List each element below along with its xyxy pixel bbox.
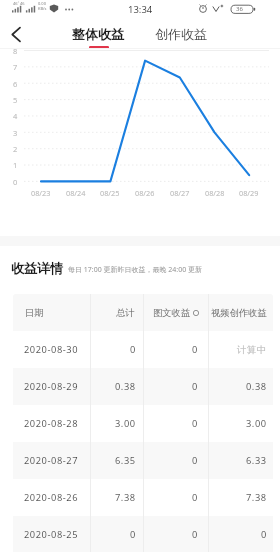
staticText: 08/24 xyxy=(66,188,86,198)
staticText: 08/29 xyxy=(239,188,259,198)
staticText: 0 xyxy=(192,380,198,393)
staticText: 0 xyxy=(130,343,136,356)
staticText: 0 xyxy=(192,454,198,467)
staticText: 0.38 xyxy=(115,380,136,393)
staticText: 1 xyxy=(13,160,18,170)
staticText: 0 xyxy=(13,177,18,187)
staticText: 创作收益 xyxy=(155,26,207,42)
staticText: 2020-08-28 xyxy=(24,417,79,430)
staticText: 8 xyxy=(13,46,18,56)
staticText: 0.00 KB/s xyxy=(38,1,47,11)
staticText: 2020-08-25 xyxy=(24,528,79,541)
button[interactable]: 创作收益 xyxy=(155,18,208,48)
staticText: 0 xyxy=(192,343,198,356)
staticText: 3.00 xyxy=(246,417,267,430)
staticText: 图文收益 xyxy=(153,307,191,319)
staticText: 08/23 xyxy=(31,188,51,198)
staticText: 2020-08-27 xyxy=(24,454,79,467)
staticText: 0 xyxy=(261,528,267,541)
staticText: 视频创作收益 xyxy=(211,307,267,319)
button[interactable]: 整体收益 xyxy=(72,18,129,48)
staticText: 7.38 xyxy=(246,491,267,504)
staticText: 2020-08-30 xyxy=(24,343,79,356)
staticText: 36 xyxy=(236,5,243,13)
staticText: 4 xyxy=(13,111,18,121)
staticText: 6.33 xyxy=(246,454,267,467)
staticText: 2020-08-26 xyxy=(24,491,79,504)
staticText: 每日 17:00 更新昨日收益，最晚 24:00 更新 xyxy=(68,265,203,275)
staticText: 0 xyxy=(192,491,198,504)
staticText: 08/28 xyxy=(205,188,225,198)
staticText: 总计 xyxy=(116,307,135,319)
staticText: 08/27 xyxy=(170,188,190,198)
staticText: 日期 xyxy=(25,307,44,319)
staticText: 0 xyxy=(130,528,136,541)
staticText: 收益详情 xyxy=(11,260,63,276)
staticText: 5 xyxy=(13,95,18,105)
staticText: 2 xyxy=(13,144,18,154)
staticText: 6 xyxy=(13,79,18,89)
staticText: 7.38 xyxy=(115,491,136,504)
staticText: 7 xyxy=(13,62,18,72)
staticText: 46⁺ 46 xyxy=(13,1,25,6)
staticText: 08/25 xyxy=(100,188,120,198)
staticText: 0.38 xyxy=(246,380,267,393)
staticText: 0 xyxy=(192,417,198,430)
staticText: 整体收益 xyxy=(72,26,124,42)
staticText: 2020-08-29 xyxy=(24,380,79,393)
staticText: 6.35 xyxy=(115,454,136,467)
button[interactable]: Back xyxy=(4,18,34,48)
staticText: 08/26 xyxy=(135,188,155,198)
staticText: 计算中 xyxy=(237,344,267,356)
staticText: 0 xyxy=(192,528,198,541)
staticText: 3 xyxy=(13,128,18,138)
staticText: 13:34 xyxy=(128,3,153,16)
staticText: 3.00 xyxy=(115,417,136,430)
